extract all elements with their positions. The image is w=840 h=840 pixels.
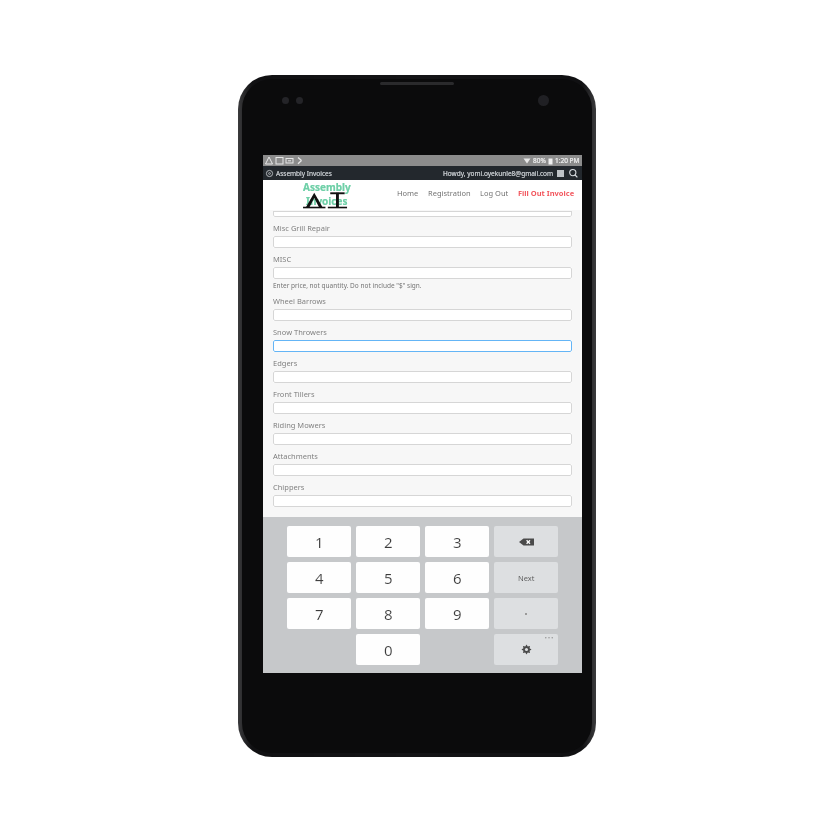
- staticText: 80%: [533, 156, 546, 165]
- staticText: Attachments: [273, 451, 318, 461]
- staticText: Misc Grill Repair: [273, 223, 330, 233]
- staticText: 0: [384, 640, 393, 660]
- button[interactable]: [273, 236, 572, 248]
- button[interactable]: Keyboard settings: [494, 634, 558, 665]
- staticText: MISC: [273, 254, 292, 264]
- button[interactable]: Decimal point: [494, 598, 558, 629]
- staticText: Assembly: [303, 180, 351, 194]
- button[interactable]: 5: [356, 562, 420, 593]
- staticText: Fill Out Invoice: [518, 188, 575, 198]
- staticText: Howdy, yomi.oyekunle8@gmail.com: [443, 169, 554, 178]
- staticText: Log Out: [480, 188, 509, 198]
- staticText: 1:20 PM: [555, 156, 580, 165]
- button[interactable]: [273, 402, 572, 414]
- button[interactable]: [273, 433, 572, 445]
- staticText: 1: [315, 532, 324, 552]
- button[interactable]: 3: [425, 526, 489, 557]
- button[interactable]: [273, 309, 572, 321]
- staticText: Invoices: [306, 194, 348, 208]
- staticText: Enter price, not quantity. Do not includ…: [273, 281, 422, 290]
- button[interactable]: [273, 267, 572, 279]
- button[interactable]: Log Out: [479, 186, 510, 200]
- button[interactable]: 1: [287, 526, 351, 557]
- button[interactable]: Assembly Invoices home: [277, 180, 377, 208]
- staticText: Wheel Barrows: [273, 296, 326, 306]
- button[interactable]: Backspace: [494, 526, 558, 557]
- button[interactable]: 7: [287, 598, 351, 629]
- staticText: Edgers: [273, 358, 298, 368]
- staticText: 4: [315, 568, 324, 588]
- staticText: 2: [384, 532, 393, 552]
- staticText: 6: [453, 568, 462, 588]
- button[interactable]: 8: [356, 598, 420, 629]
- button[interactable]: [273, 464, 572, 476]
- button[interactable]: [273, 371, 572, 383]
- staticText: 7: [315, 604, 324, 624]
- button[interactable]: Search: [567, 167, 579, 179]
- button[interactable]: [273, 340, 572, 352]
- staticText: 8: [384, 604, 393, 624]
- button[interactable]: Fill Out Invoice: [517, 186, 576, 200]
- staticText: Next: [518, 573, 535, 583]
- button[interactable]: Next: [494, 562, 558, 593]
- button[interactable]: 0: [356, 634, 420, 665]
- button[interactable]: [273, 211, 572, 217]
- staticText: Snow Throwers: [273, 327, 327, 337]
- staticText: Front Tillers: [273, 389, 315, 399]
- button[interactable]: 9: [425, 598, 489, 629]
- staticText: Riding Mowers: [273, 420, 326, 430]
- staticText: Home: [397, 188, 419, 198]
- button[interactable]: 4: [287, 562, 351, 593]
- button[interactable]: Home: [396, 186, 420, 200]
- button[interactable]: 6: [425, 562, 489, 593]
- staticText: 9: [453, 604, 462, 624]
- staticText: Chippers: [273, 482, 305, 492]
- staticText: Assembly Invoices: [276, 169, 332, 178]
- staticText: Registration: [428, 188, 471, 198]
- button[interactable]: [273, 495, 572, 507]
- button[interactable]: 2: [356, 526, 420, 557]
- button[interactable]: Registration: [427, 186, 472, 200]
- staticText: 5: [384, 568, 393, 588]
- staticText: 3: [453, 532, 462, 552]
